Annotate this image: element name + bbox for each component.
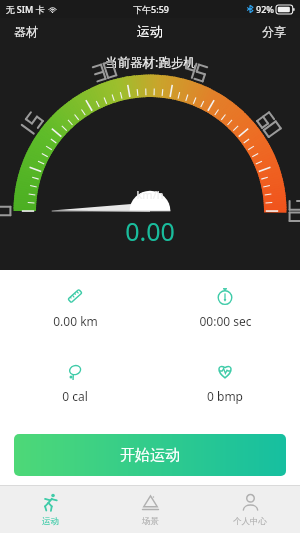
staticText: 0.00: [125, 214, 175, 248]
staticText: 下午5:59: [133, 3, 169, 15]
button[interactable]: Calories: [0, 359, 150, 406]
button[interactable]: 运动: [0, 486, 100, 533]
staticText: 0 bmp: [207, 388, 243, 404]
button[interactable]: 个人中心: [200, 486, 300, 533]
staticText: 分享: [262, 24, 286, 39]
staticText: 个人中心: [233, 516, 267, 527]
button[interactable]: 器材: [0, 20, 52, 43]
button[interactable]: 开始运动: [14, 434, 286, 476]
staticText: km/h: [136, 187, 164, 202]
button[interactable]: Heart rate: [150, 359, 300, 406]
button[interactable]: 场景: [100, 486, 200, 533]
button[interactable]: Distance: [0, 284, 150, 331]
staticText: 当前器材:跑步机: [105, 54, 196, 71]
staticText: 92%: [256, 3, 274, 15]
staticText: 0.00 km: [53, 313, 98, 329]
staticText: 开始运动: [120, 446, 180, 465]
button[interactable]: Time: [150, 284, 300, 331]
staticText: 器材: [14, 24, 38, 39]
staticText: 运动: [42, 516, 59, 527]
staticText: 00:00 sec: [199, 313, 252, 329]
staticText: 0 cal: [62, 388, 88, 404]
staticText: 运动: [137, 23, 163, 39]
staticText: 无 SIM 卡: [5, 3, 45, 15]
staticText: 场景: [142, 516, 159, 527]
button[interactable]: 分享: [248, 20, 300, 43]
